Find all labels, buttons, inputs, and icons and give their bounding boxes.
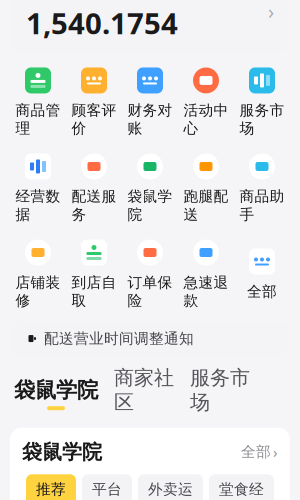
button[interactable]: 跑腿配送 [178, 149, 234, 225]
staticText: 急速退款 [183, 273, 228, 309]
staticText: 服务市场 [239, 101, 284, 137]
button[interactable]: 外卖运营 [138, 474, 203, 500]
staticText: 配送服务 [71, 187, 116, 223]
staticText: 推荐阅读 [36, 480, 66, 500]
button[interactable]: 全部 [234, 244, 290, 302]
button[interactable]: 顾客评价 [66, 63, 122, 139]
staticText: 1,540.17 [26, 3, 144, 42]
staticText: 商品助手 [239, 187, 284, 223]
staticText: 配送营业时间调整通知 [44, 329, 194, 347]
button[interactable]: 配送服务 [66, 149, 122, 225]
button[interactable]: 经营数据 [10, 149, 66, 225]
staticText: 袋鼠学院 [127, 187, 172, 223]
staticText: 订单保险 [127, 273, 172, 309]
staticText: 外卖运营 [148, 480, 193, 500]
staticText: 经营数据 [15, 187, 60, 223]
button[interactable]: 订单保险 [122, 235, 178, 311]
staticText: 到店自取 [71, 273, 116, 309]
button[interactable]: 配送营业时间调整通知 [12, 321, 288, 355]
staticText: 商家社区 [114, 366, 174, 415]
staticText: 服务市场 [190, 366, 250, 415]
staticText: 跑腿配送 [183, 187, 228, 223]
staticText: 袋鼠学院 [14, 377, 98, 403]
button[interactable]: 堂食经营 [209, 474, 274, 500]
button[interactable]: 服务市场 [234, 63, 290, 139]
staticText: 顾客评价 [71, 101, 116, 137]
button[interactable]: 活动中心 [178, 63, 234, 139]
staticText: 堂食经营 [219, 480, 264, 500]
staticText: 54 [144, 3, 178, 42]
button[interactable]: 平台规则 [82, 474, 132, 500]
button[interactable]: 急速退款 [178, 235, 234, 311]
button[interactable]: 店铺装修 [10, 235, 66, 311]
staticText: 平台规则 [92, 480, 122, 500]
staticText: › [268, 0, 274, 24]
button[interactable]: 商家社区 [114, 366, 174, 422]
button[interactable]: 财务对账 [122, 63, 178, 139]
staticText: 活动中心 [183, 101, 228, 137]
button[interactable]: 商品助手 [234, 149, 290, 225]
staticText: › [273, 442, 278, 462]
button[interactable]: 袋鼠学院 [14, 377, 98, 410]
button[interactable]: 商品管理 [10, 63, 66, 139]
staticText: 全部 [247, 282, 277, 300]
button[interactable]: 袋鼠学院 [122, 149, 178, 225]
button[interactable]: 预计收入/元 [12, 0, 288, 53]
staticText: 全部 [241, 443, 271, 461]
button[interactable]: 到店自取 [66, 235, 122, 311]
button[interactable]: 全部 [241, 442, 278, 462]
button[interactable]: 推荐阅读 [26, 474, 76, 500]
staticText: 财务对账 [127, 101, 172, 137]
button[interactable]: 服务市场 [190, 366, 250, 422]
staticText: 袋鼠学院 [22, 440, 102, 464]
staticText: 店铺装修 [15, 273, 60, 309]
staticText: 商品管理 [15, 101, 60, 137]
